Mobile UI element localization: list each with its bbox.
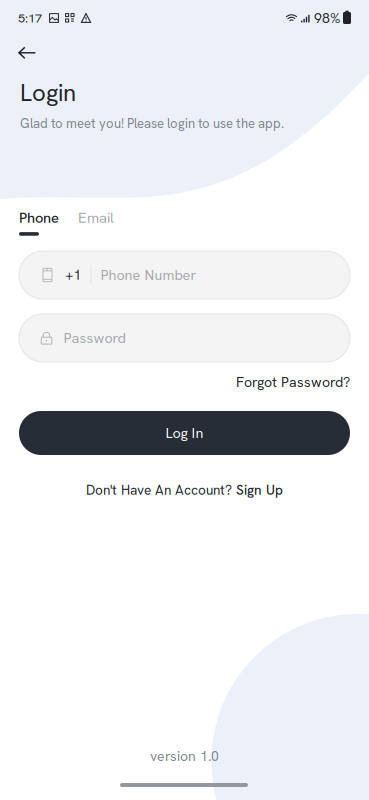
staticText: 5:17 (18, 10, 42, 26)
staticText: Don't Have An Account? (86, 481, 236, 499)
staticText: Login (20, 77, 76, 108)
staticText: Phone Number (100, 266, 196, 284)
staticText: Password (63, 329, 125, 347)
staticText: Phone (19, 208, 59, 227)
button[interactable]: Back (18, 41, 52, 65)
staticText: Email (78, 208, 114, 227)
staticText: Forgot Password? (236, 373, 350, 391)
staticText: +1 (65, 266, 81, 284)
button[interactable]: Password (19, 314, 350, 362)
staticText: version 1.0 (150, 747, 219, 765)
staticText: 98% (314, 9, 340, 27)
button[interactable]: +1 (19, 251, 350, 299)
button[interactable]: Forgot Password? (0, 373, 369, 391)
staticText: Log In (165, 424, 203, 442)
button[interactable]: Don't Have An Account? (0, 481, 369, 499)
staticText: Sign Up (236, 481, 283, 499)
button[interactable]: Phone (19, 208, 59, 236)
button[interactable]: Log In (19, 411, 350, 455)
button[interactable]: Email (78, 208, 114, 236)
staticText: Glad to meet you! Please login to use th… (20, 115, 284, 132)
